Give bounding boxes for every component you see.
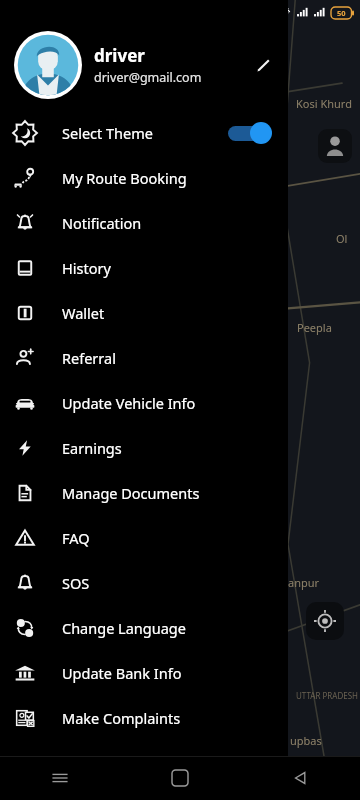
staticText: Manage Documents [62, 483, 288, 503]
staticText: Kosi Khurd [296, 96, 352, 111]
button[interactable]: Driver location [318, 129, 352, 163]
button[interactable]: Wallet [0, 290, 288, 335]
staticText: Select Theme [62, 123, 228, 143]
staticText: Make Complaints [62, 708, 288, 728]
button[interactable]: My location [306, 602, 344, 640]
button[interactable]: Manage Documents [0, 470, 288, 515]
button[interactable]: Earnings [0, 425, 288, 470]
staticText: anpur [288, 575, 320, 590]
button[interactable]: Recent apps [0, 756, 120, 800]
staticText: Update Vehicle Info [62, 393, 288, 413]
staticText: Referral [62, 348, 288, 368]
staticText: upbas [290, 733, 322, 748]
staticText: Change Language [62, 618, 288, 638]
staticText: UTTAR PRADESH [296, 690, 359, 701]
button[interactable]: Back [240, 756, 360, 800]
button[interactable]: Update Bank Info [0, 650, 288, 695]
button[interactable]: driver [0, 24, 288, 106]
button[interactable]: Make Complaints [0, 695, 288, 740]
staticText: Ol [336, 231, 348, 246]
button[interactable]: Home [120, 756, 240, 800]
staticText: My Route Booking [62, 168, 288, 188]
staticText: Peepla [297, 320, 332, 335]
staticText: FAQ [62, 528, 288, 548]
button[interactable]: Change Language [0, 605, 288, 650]
staticText: Wallet [62, 303, 288, 323]
staticText: SOS [62, 573, 288, 593]
staticText: driver@gmail.com [94, 69, 202, 86]
button[interactable]: Update Vehicle Info [0, 380, 288, 425]
staticText: Earnings [62, 438, 288, 458]
button[interactable]: Notification [0, 200, 288, 245]
staticText: Notification [62, 213, 288, 233]
button[interactable]: FAQ [0, 515, 288, 560]
button[interactable]: History [0, 245, 288, 290]
staticText: History [62, 258, 288, 278]
staticText: driver [94, 44, 145, 67]
button[interactable]: Toggle theme [228, 122, 272, 144]
staticText: Update Bank Info [62, 663, 288, 683]
staticText: 50 [337, 8, 346, 18]
button[interactable]: My Route Booking [0, 155, 288, 200]
button[interactable]: Edit profile [244, 46, 282, 84]
button[interactable]: SOS [0, 560, 288, 605]
button[interactable]: Referral [0, 335, 288, 380]
button[interactable]: Select Theme [0, 110, 288, 155]
